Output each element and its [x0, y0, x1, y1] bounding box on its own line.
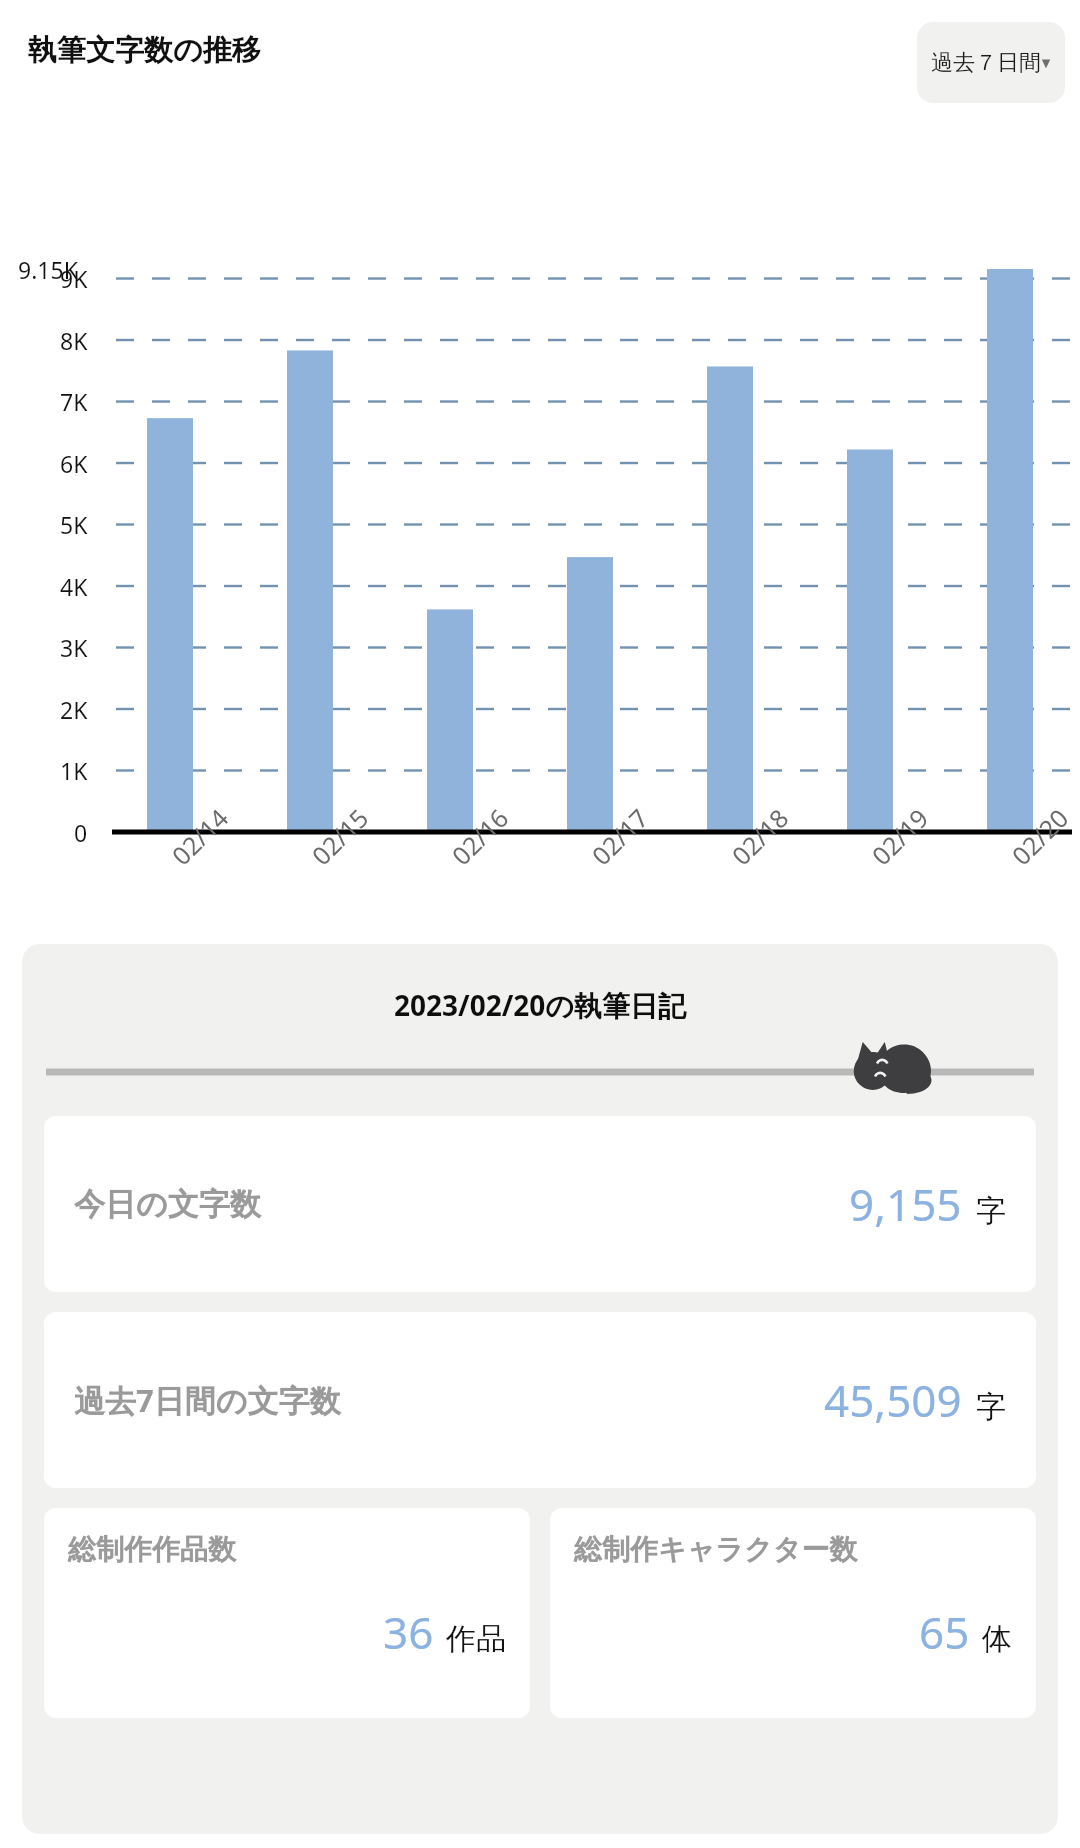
staticText: 9,155 — [849, 1174, 962, 1234]
staticText: 体 — [982, 1620, 1012, 1658]
button[interactable]: 過去7日間の文字数 — [44, 1312, 1036, 1488]
staticText: 今日の文字数 — [74, 1185, 261, 1224]
staticText: 執筆文字数の推移 — [28, 32, 261, 69]
button[interactable]: 総制作作品数 — [44, 1508, 530, 1718]
staticText: 過去7日間の文字数 — [74, 1379, 341, 1421]
button[interactable]: 過去７日間 — [917, 22, 1065, 103]
staticText: 過去７日間 — [931, 49, 1041, 77]
staticText: 総制作作品数 — [68, 1532, 236, 1567]
staticText: 字 — [976, 1388, 1006, 1426]
staticText: 総制作キャラクター数 — [574, 1532, 858, 1567]
staticText: 65 — [919, 1602, 970, 1662]
staticText: 字 — [976, 1192, 1006, 1230]
staticText: 36 — [383, 1602, 434, 1662]
button[interactable]: 今日の文字数 — [44, 1116, 1036, 1292]
staticText: 45,509 — [824, 1370, 962, 1430]
button[interactable]: 総制作キャラクター数 — [550, 1508, 1036, 1718]
staticText: 2023/02/20の執筆日記 — [22, 986, 1058, 1024]
staticText: 作品 — [446, 1620, 506, 1658]
